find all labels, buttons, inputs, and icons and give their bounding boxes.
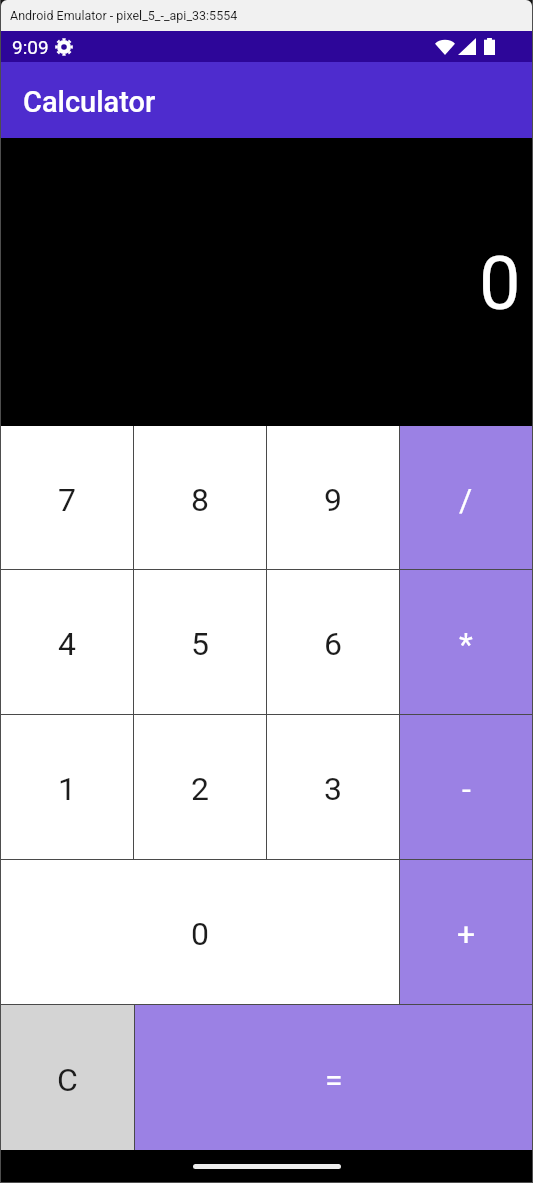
- button[interactable]: 3: [267, 715, 399, 859]
- staticText: 6: [324, 625, 342, 663]
- staticText: -: [462, 770, 471, 808]
- staticText: Android Emulator - pixel_5_-_api_33:5554: [10, 8, 238, 23]
- button[interactable]: 9: [267, 426, 399, 569]
- button[interactable]: /: [400, 426, 532, 569]
- button[interactable]: 0: [1, 860, 399, 1004]
- other: Mobile signal: [458, 38, 476, 55]
- button[interactable]: 7: [1, 426, 133, 569]
- button[interactable]: 4: [1, 570, 133, 714]
- button[interactable]: -: [400, 715, 532, 859]
- staticText: 1: [58, 770, 76, 808]
- other: Wi-Fi: [435, 38, 455, 55]
- staticText: *: [459, 625, 473, 663]
- button[interactable]: 6: [267, 570, 399, 714]
- button[interactable]: 1: [1, 715, 133, 859]
- staticText: =: [325, 1061, 343, 1099]
- staticText: 4: [58, 625, 76, 663]
- staticText: 2: [191, 770, 209, 808]
- button[interactable]: *: [400, 570, 532, 714]
- other: Settings: [55, 38, 73, 56]
- other: Home: [193, 1164, 341, 1169]
- staticText: 0: [191, 915, 209, 953]
- staticText: +: [457, 915, 476, 953]
- staticText: 5: [191, 625, 209, 663]
- staticText: 7: [58, 481, 76, 519]
- staticText: 9:09: [12, 36, 49, 58]
- button[interactable]: C: [1, 1005, 134, 1150]
- staticText: 9: [324, 481, 342, 519]
- staticText: 0: [479, 240, 521, 327]
- staticText: 3: [324, 770, 342, 808]
- button[interactable]: 5: [134, 570, 266, 714]
- button[interactable]: 8: [134, 426, 266, 569]
- staticText: 8: [191, 481, 209, 519]
- other: Battery: [484, 38, 495, 55]
- staticText: /: [459, 481, 473, 519]
- button[interactable]: =: [135, 1005, 532, 1150]
- staticText: C: [57, 1061, 78, 1099]
- staticText: Calculator: [23, 85, 156, 119]
- button[interactable]: 2: [134, 715, 266, 859]
- button[interactable]: +: [400, 860, 532, 1004]
